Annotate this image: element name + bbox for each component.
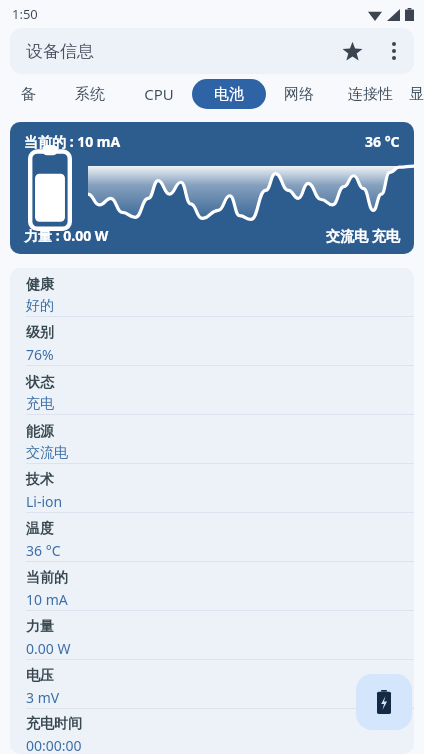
button[interactable]: 当前的 bbox=[10, 562, 414, 610]
button[interactable]: 电压 bbox=[10, 660, 414, 708]
button[interactable]: 网络 bbox=[266, 79, 332, 109]
staticText: 36 °C bbox=[365, 132, 400, 151]
staticText: 1:50 bbox=[12, 5, 38, 23]
button[interactable]: 力量 bbox=[10, 611, 414, 659]
button[interactable]: 备 bbox=[2, 79, 54, 109]
staticText: 电池 bbox=[214, 85, 244, 104]
button[interactable]: Favorite bbox=[330, 29, 374, 73]
button[interactable]: 状态 bbox=[10, 366, 414, 414]
button[interactable]: 温度 bbox=[10, 513, 414, 561]
staticText: 级别 bbox=[26, 324, 54, 342]
staticText: 温度 bbox=[26, 520, 54, 538]
staticText: 交流电 充电 bbox=[326, 226, 400, 245]
staticText: 当前的 : 10 mA bbox=[24, 132, 121, 151]
staticText: 状态 bbox=[26, 374, 54, 392]
staticText: 连接性 bbox=[348, 85, 393, 104]
staticText: 00:00:00 bbox=[26, 736, 82, 754]
staticText: 0.00 W bbox=[26, 639, 71, 658]
button[interactable]: More options bbox=[374, 31, 414, 71]
button[interactable]: 能源 bbox=[10, 415, 414, 463]
button[interactable]: 充电时间 bbox=[10, 709, 414, 754]
staticText: 交流电 bbox=[26, 444, 68, 462]
button[interactable]: CPU bbox=[126, 79, 192, 109]
staticText: 显 bbox=[409, 85, 424, 104]
staticText: 力量 : 0.00 W bbox=[24, 226, 109, 245]
button[interactable]: 连接性 bbox=[332, 79, 408, 109]
staticText: 技术 bbox=[26, 471, 54, 489]
staticText: 当前的 bbox=[26, 569, 68, 587]
staticText: 电压 bbox=[26, 667, 54, 685]
button[interactable]: 显 bbox=[408, 79, 424, 109]
button[interactable]: Battery charging bbox=[356, 674, 412, 730]
staticText: CPU bbox=[144, 84, 174, 104]
staticText: 充电时间 bbox=[26, 715, 82, 733]
staticText: 充电 bbox=[26, 395, 54, 413]
button[interactable]: 系统 bbox=[54, 79, 126, 109]
staticText: 36 °C bbox=[26, 541, 61, 560]
staticText: 好的 bbox=[26, 297, 54, 315]
staticText: 力量 bbox=[26, 618, 54, 636]
staticText: 10 mA bbox=[26, 590, 68, 609]
button[interactable]: 电池 bbox=[192, 79, 266, 109]
staticText: 备 bbox=[21, 85, 36, 104]
staticText: 3 mV bbox=[26, 688, 60, 707]
staticText: Li-ion bbox=[26, 492, 63, 511]
staticText: 能源 bbox=[26, 423, 54, 441]
button[interactable]: 级别 bbox=[10, 317, 414, 365]
staticText: 76% bbox=[26, 345, 54, 364]
staticText: 健康 bbox=[26, 276, 54, 294]
button[interactable]: 健康 bbox=[10, 268, 414, 316]
button[interactable]: 技术 bbox=[10, 464, 414, 512]
staticText: 设备信息 bbox=[26, 41, 94, 62]
staticText: 系统 bbox=[75, 85, 105, 104]
staticText: 网络 bbox=[284, 85, 314, 104]
